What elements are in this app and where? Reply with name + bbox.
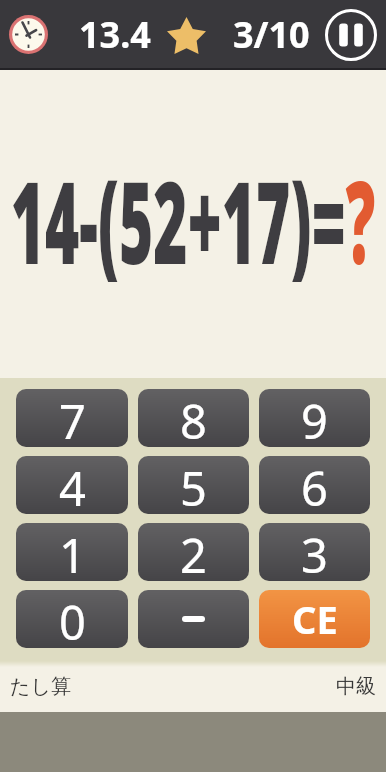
button[interactable]: 1 — [16, 523, 128, 581]
button[interactable] — [138, 590, 249, 648]
staticText: 7 — [59, 389, 86, 447]
button[interactable]: 0 — [16, 590, 128, 648]
button[interactable] — [325, 9, 377, 61]
staticText: 8 — [180, 389, 207, 447]
staticText: 6 — [301, 456, 328, 514]
staticText: 13.4 — [79, 10, 151, 59]
button[interactable]: CE — [259, 590, 370, 648]
staticText: 0 — [59, 590, 86, 648]
button[interactable]: 8 — [138, 389, 249, 447]
staticText: 4 — [59, 456, 86, 514]
button[interactable]: 9 — [259, 389, 370, 447]
button[interactable]: 6 — [259, 456, 370, 514]
staticText: CE — [292, 593, 338, 645]
button[interactable]: 3 — [259, 523, 370, 581]
staticText: 2 — [180, 523, 207, 581]
staticText: 中級 — [336, 674, 376, 699]
staticText: 3 — [301, 523, 328, 581]
staticText: 1 — [59, 523, 86, 581]
button[interactable]: 4 — [16, 456, 128, 514]
button[interactable]: 7 — [16, 389, 128, 447]
staticText: 3/10 — [233, 10, 310, 59]
button[interactable]: 5 — [138, 456, 249, 514]
staticText: たし算 — [10, 674, 71, 699]
staticText: 14-(52+17)=? — [11, 143, 375, 297]
staticText: 9 — [301, 389, 328, 447]
button[interactable]: 2 — [138, 523, 249, 581]
staticText: 5 — [180, 456, 207, 514]
